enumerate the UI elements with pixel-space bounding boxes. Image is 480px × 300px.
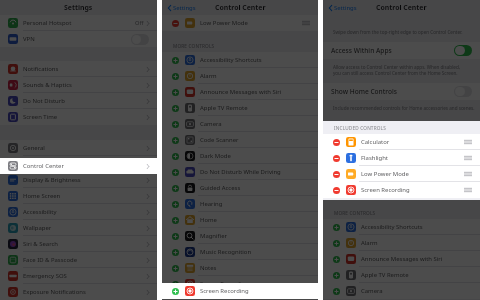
button[interactable]: Back to Settings bbox=[323, 1, 361, 15]
staticText: Alarm bbox=[361, 239, 378, 247]
staticText: Control Center bbox=[215, 3, 266, 12]
button[interactable]: Wallpaper bbox=[0, 220, 157, 236]
button[interactable]: Flashlight bbox=[323, 150, 480, 166]
button[interactable]: Apple TV Remote bbox=[323, 267, 480, 283]
button[interactable]: Alarm bbox=[323, 235, 480, 251]
staticText: Music Recognition bbox=[200, 248, 252, 256]
staticText: Apple TV Remote bbox=[200, 104, 248, 112]
staticText: MORE CONTROLS bbox=[173, 43, 215, 49]
button[interactable]: Magnifier bbox=[162, 228, 318, 244]
staticText: INCLUDED CONTROLS bbox=[334, 125, 386, 131]
staticText: Personal Hotspot bbox=[23, 19, 72, 27]
staticText: Alarm bbox=[200, 72, 217, 80]
button[interactable]: Alarm bbox=[162, 68, 318, 84]
button[interactable]: Accessibility Shortcuts bbox=[323, 219, 480, 235]
button[interactable]: Hearing bbox=[162, 196, 318, 212]
button[interactable]: Camera bbox=[162, 116, 318, 132]
button[interactable]: Home bbox=[162, 212, 318, 228]
staticText: MORE CONTROLS bbox=[334, 210, 376, 216]
staticText: Flashlight bbox=[361, 154, 388, 162]
button[interactable]: Calculator bbox=[323, 134, 480, 150]
staticText: Accessibility bbox=[23, 208, 57, 216]
staticText: Code Scanner bbox=[200, 136, 239, 144]
button[interactable]: Low Power Mode bbox=[323, 166, 480, 182]
button[interactable]: Access Within Apps bbox=[323, 42, 480, 59]
button[interactable]: General bbox=[0, 140, 157, 156]
button[interactable]: Show Home Controls bbox=[323, 83, 480, 100]
staticText: Low Power Mode bbox=[361, 170, 409, 178]
staticText: Face ID & Passcode bbox=[23, 256, 77, 264]
button[interactable]: Home Screen bbox=[0, 188, 157, 204]
staticText: Access Within Apps bbox=[331, 46, 392, 55]
button[interactable]: Siri & Search bbox=[0, 236, 157, 252]
staticText: Notes bbox=[200, 264, 217, 272]
button[interactable]: Screen Recording bbox=[323, 182, 480, 198]
button[interactable]: Screen Recording bbox=[162, 276, 318, 292]
staticText: Screen Recording bbox=[361, 186, 410, 194]
button[interactable]: Notifications bbox=[0, 61, 157, 77]
staticText: Emergency SOS bbox=[23, 272, 67, 280]
staticText: Do Not Disturb While Driving bbox=[200, 168, 281, 176]
button[interactable]: Accessibility Shortcuts bbox=[162, 52, 318, 68]
staticText: Display & Brightness bbox=[23, 176, 81, 184]
button[interactable]: Screen Recording bbox=[323, 182, 480, 198]
button[interactable]: Back to Settings bbox=[162, 1, 200, 15]
button[interactable]: Do Not Disturb bbox=[0, 93, 157, 109]
staticText: Dark Mode bbox=[200, 152, 231, 160]
staticText: Apple TV Remote bbox=[361, 271, 409, 279]
button[interactable]: Guided Access bbox=[162, 180, 318, 196]
button[interactable]: Personal Hotspot bbox=[0, 15, 157, 31]
button[interactable]: Flashlight bbox=[323, 150, 480, 166]
staticText: Home bbox=[200, 216, 217, 224]
staticText: Allow access to Control Center within ap… bbox=[333, 64, 476, 76]
staticText: Include recommended controls for Home ac… bbox=[333, 105, 476, 111]
staticText: Low Power Mode bbox=[200, 19, 248, 27]
button[interactable]: Apple TV Remote bbox=[162, 100, 318, 116]
staticText: General bbox=[23, 144, 45, 152]
staticText: Hearing bbox=[200, 200, 223, 208]
button[interactable]: Music Recognition bbox=[162, 244, 318, 260]
button[interactable]: Do Not Disturb While Driving bbox=[162, 164, 318, 180]
button[interactable]: Screen Recording bbox=[162, 283, 318, 299]
button[interactable]: Accessibility bbox=[0, 204, 157, 220]
staticText: Control Center bbox=[376, 3, 427, 12]
staticText: Camera bbox=[200, 120, 222, 128]
staticText: Announce Messages with Siri bbox=[200, 88, 282, 96]
button[interactable]: VPN bbox=[0, 31, 157, 47]
button[interactable]: Face ID & Passcode bbox=[0, 252, 157, 268]
button[interactable]: Low Power Mode bbox=[323, 166, 480, 182]
staticText: Camera bbox=[361, 287, 383, 295]
button[interactable]: Low Power Mode bbox=[162, 15, 318, 31]
staticText: Magnifier bbox=[200, 232, 227, 240]
staticText: Control Center bbox=[23, 160, 64, 168]
button[interactable]: Sounds & Haptics bbox=[0, 77, 157, 93]
staticText: VPN bbox=[23, 35, 35, 43]
button[interactable]: Calculator bbox=[323, 134, 480, 150]
staticText: Guided Access bbox=[200, 184, 241, 192]
button[interactable]: Control Center bbox=[0, 158, 157, 174]
staticText: Calculator bbox=[361, 138, 390, 146]
button[interactable]: Exposure Notifications bbox=[0, 284, 157, 300]
staticText: Screen Recording bbox=[200, 280, 249, 288]
button[interactable]: Display & Brightness bbox=[0, 172, 157, 188]
button[interactable]: Emergency SOS bbox=[0, 268, 157, 284]
staticText: Settings bbox=[334, 4, 357, 12]
staticText: Wallpaper bbox=[23, 224, 52, 232]
staticText: Screen Recording bbox=[361, 186, 410, 194]
button[interactable]: Announce Messages with Siri bbox=[323, 251, 480, 267]
button[interactable]: Control Center bbox=[0, 156, 157, 172]
button[interactable]: Screen Time bbox=[0, 109, 157, 125]
staticText: Control Center bbox=[23, 162, 64, 170]
staticText: Screen Time bbox=[23, 113, 58, 121]
staticText: Swipe down from the top-right edge to op… bbox=[333, 29, 476, 35]
button[interactable]: Dark Mode bbox=[162, 148, 318, 164]
button[interactable]: Camera bbox=[323, 283, 480, 299]
staticText: Do Not Disturb bbox=[23, 97, 65, 105]
staticText: Accessibility Shortcuts bbox=[361, 223, 423, 231]
staticText: Siri & Search bbox=[23, 240, 59, 248]
button[interactable]: Notes bbox=[162, 260, 318, 276]
button[interactable]: Code Scanner bbox=[162, 132, 318, 148]
button[interactable]: Announce Messages with Siri bbox=[162, 84, 318, 100]
staticText: Accessibility Shortcuts bbox=[200, 56, 262, 64]
staticText: Home Screen bbox=[23, 192, 61, 200]
